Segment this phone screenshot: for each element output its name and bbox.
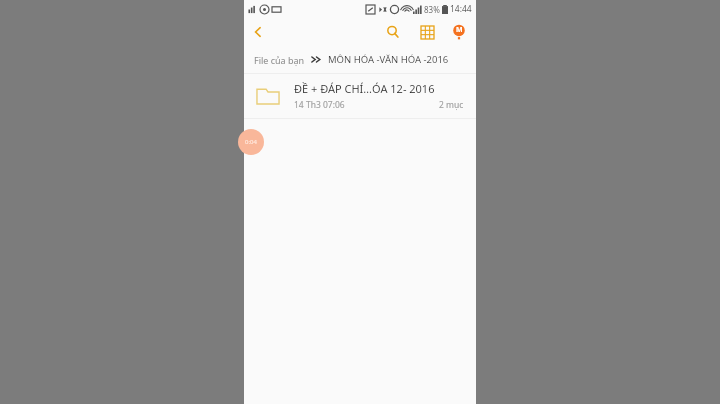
staticText: 14:44: [450, 3, 472, 15]
staticText: MÔN HÓA -VĂN HÓA -2016: [328, 53, 449, 66]
staticText: 0:04: [245, 138, 257, 146]
button[interactable]: MÔN HÓA -VĂN HÓA -2016: [328, 53, 449, 66]
staticText: M: [456, 25, 463, 35]
other: Recording timer: [238, 129, 264, 155]
staticText: File của bạn: [254, 54, 305, 66]
staticText: ĐỀ + ĐÁP CHÍ…ÓA 12- 2016: [294, 81, 435, 96]
button[interactable]: File của bạn: [254, 54, 305, 66]
button[interactable]: View as grid: [413, 18, 441, 46]
button[interactable]: More options: [445, 18, 473, 46]
button[interactable]: Back: [244, 18, 272, 46]
staticText: 83%: [424, 4, 440, 15]
button[interactable]: ĐỀ + ĐÁP CHÍ…ÓA 12- 2016: [244, 74, 476, 118]
button[interactable]: Search: [379, 18, 407, 46]
staticText: 14 Th3 07:06: [294, 99, 345, 111]
staticText: 2 mục: [439, 99, 464, 111]
